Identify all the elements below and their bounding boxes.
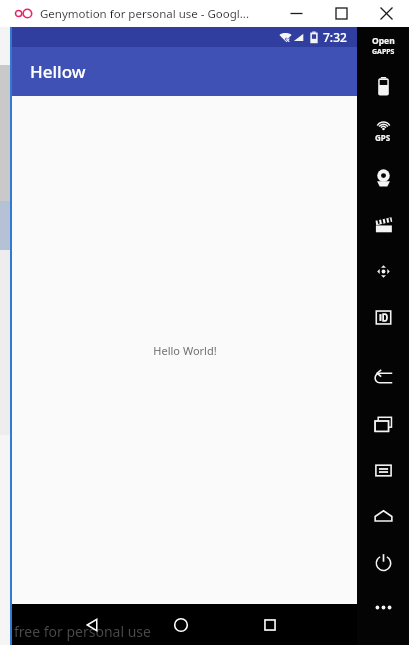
button[interactable]: Recent apps <box>357 401 409 447</box>
button[interactable]: Menu <box>357 447 409 493</box>
button[interactable]: Back <box>74 607 110 643</box>
button[interactable]: Record screencast <box>357 201 409 248</box>
button[interactable]: Close <box>364 0 409 27</box>
staticText: Genymotion for personal use - Googl... <box>40 6 250 22</box>
button[interactable]: Power <box>357 539 409 585</box>
button[interactable]: D-pad <box>357 248 409 294</box>
button[interactable]: Back <box>357 355 409 401</box>
button[interactable]: Camera <box>357 154 409 201</box>
staticText: 7:32 <box>323 29 347 45</box>
button[interactable]: Identifiers <box>357 294 409 341</box>
button[interactable]: Recent apps <box>252 607 288 643</box>
staticText: Open <box>372 35 395 47</box>
staticText: GPS <box>375 132 391 143</box>
staticText: free for personal use <box>14 622 151 641</box>
button[interactable]: Home <box>163 607 199 643</box>
button[interactable]: Home <box>357 493 409 539</box>
button[interactable]: More options <box>357 585 409 629</box>
staticText: Hello World! <box>153 343 217 358</box>
staticText: Hellow <box>30 60 86 83</box>
button[interactable]: GPS <box>357 108 409 154</box>
button[interactable]: Hellow <box>12 47 357 96</box>
button[interactable]: Maximize <box>319 0 364 27</box>
button[interactable]: Battery <box>357 65 409 108</box>
button[interactable]: Minimize <box>274 0 319 27</box>
button[interactable]: Open <box>357 27 409 65</box>
staticText: GAPPS <box>372 47 395 57</box>
